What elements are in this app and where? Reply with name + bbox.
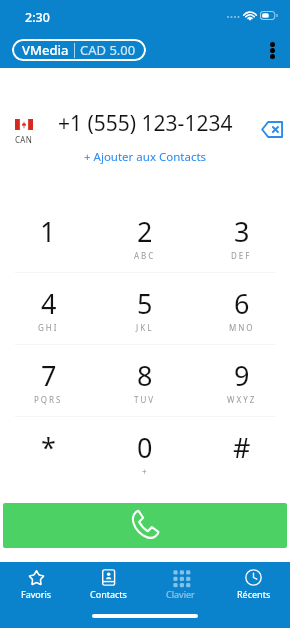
- staticText: 2:30: [25, 9, 50, 26]
- button[interactable]: Clavier: [144, 562, 217, 607]
- staticText: Récents: [237, 588, 271, 600]
- staticText: 6: [234, 285, 250, 322]
- button[interactable]: Backspace: [254, 111, 290, 147]
- staticText: 3: [234, 213, 250, 250]
- button[interactable]: 7: [0, 345, 96, 416]
- staticText: CAN: [15, 134, 33, 145]
- button[interactable]: More options: [254, 32, 290, 68]
- button[interactable]: 5: [96, 273, 193, 344]
- button[interactable]: Favoris: [0, 562, 72, 607]
- button[interactable]: 9: [193, 345, 290, 416]
- staticText: JKL: [136, 322, 154, 333]
- button[interactable]: 1: [0, 201, 96, 272]
- button[interactable]: 6: [193, 273, 290, 344]
- button[interactable]: 4: [0, 273, 96, 344]
- staticText: +1 (555) 123-1234: [58, 109, 233, 138]
- staticText: 7: [41, 357, 57, 394]
- staticText: 8: [137, 357, 153, 394]
- staticText: ABC: [134, 250, 156, 261]
- staticText: DEF: [231, 250, 252, 261]
- button[interactable]: 2: [96, 201, 193, 272]
- staticText: TUV: [134, 394, 156, 405]
- button[interactable]: Call: [3, 503, 287, 548]
- staticText: Favoris: [21, 588, 52, 600]
- button[interactable]: VMedia: [12, 39, 146, 61]
- staticText: CAD 5.00: [80, 41, 136, 59]
- button[interactable]: Contacts: [72, 562, 144, 607]
- staticText: WXYZ: [227, 394, 257, 405]
- button[interactable]: 0: [96, 417, 193, 488]
- staticText: 5: [137, 285, 153, 322]
- button[interactable]: Récents: [217, 562, 290, 607]
- staticText: 1: [40, 213, 56, 250]
- staticText: VMedia: [22, 41, 69, 59]
- staticText: #: [233, 429, 251, 466]
- staticText: *: [41, 429, 56, 466]
- button[interactable]: *: [0, 417, 96, 488]
- staticText: 9: [234, 357, 250, 394]
- staticText: MNO: [229, 322, 255, 333]
- staticText: PQRS: [34, 394, 63, 405]
- staticText: 0: [137, 429, 153, 466]
- button[interactable]: 3: [193, 201, 290, 272]
- staticText: +: [142, 466, 149, 477]
- staticText: Clavier: [166, 588, 195, 600]
- staticText: 2: [137, 213, 153, 250]
- button[interactable]: #: [193, 417, 290, 488]
- staticText: 4: [41, 285, 57, 322]
- button[interactable]: 8: [96, 345, 193, 416]
- staticText: GHI: [38, 322, 59, 333]
- button[interactable]: + Ajouter aux Contacts: [84, 149, 207, 165]
- staticText: Contacts: [90, 588, 127, 600]
